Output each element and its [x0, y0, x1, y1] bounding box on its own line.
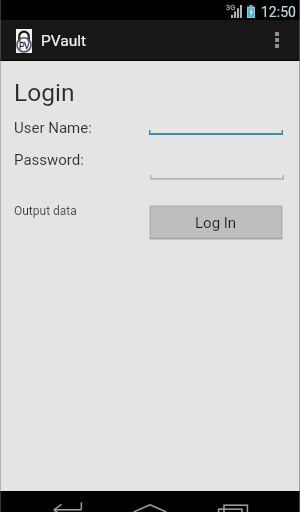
button[interactable]: Password field	[150, 168, 284, 180]
staticText: Output data	[14, 204, 77, 218]
staticText: P	[19, 41, 25, 52]
staticText: Password:	[14, 151, 84, 169]
staticText: 3G	[226, 3, 236, 12]
button[interactable]: Back	[50, 502, 82, 512]
staticText: User Name:	[14, 119, 92, 137]
button[interactable]: Home	[133, 502, 167, 512]
staticText: 12:50	[261, 4, 296, 20]
button[interactable]: Log In	[150, 206, 282, 239]
staticText: PVault	[41, 32, 87, 50]
staticText: V	[24, 41, 30, 52]
button[interactable]: Recent apps	[218, 502, 248, 512]
button[interactable]: More options	[264, 20, 290, 60]
staticText: Login	[14, 78, 75, 107]
staticText: Log In	[195, 214, 237, 232]
button[interactable]: User name field	[149, 123, 283, 135]
